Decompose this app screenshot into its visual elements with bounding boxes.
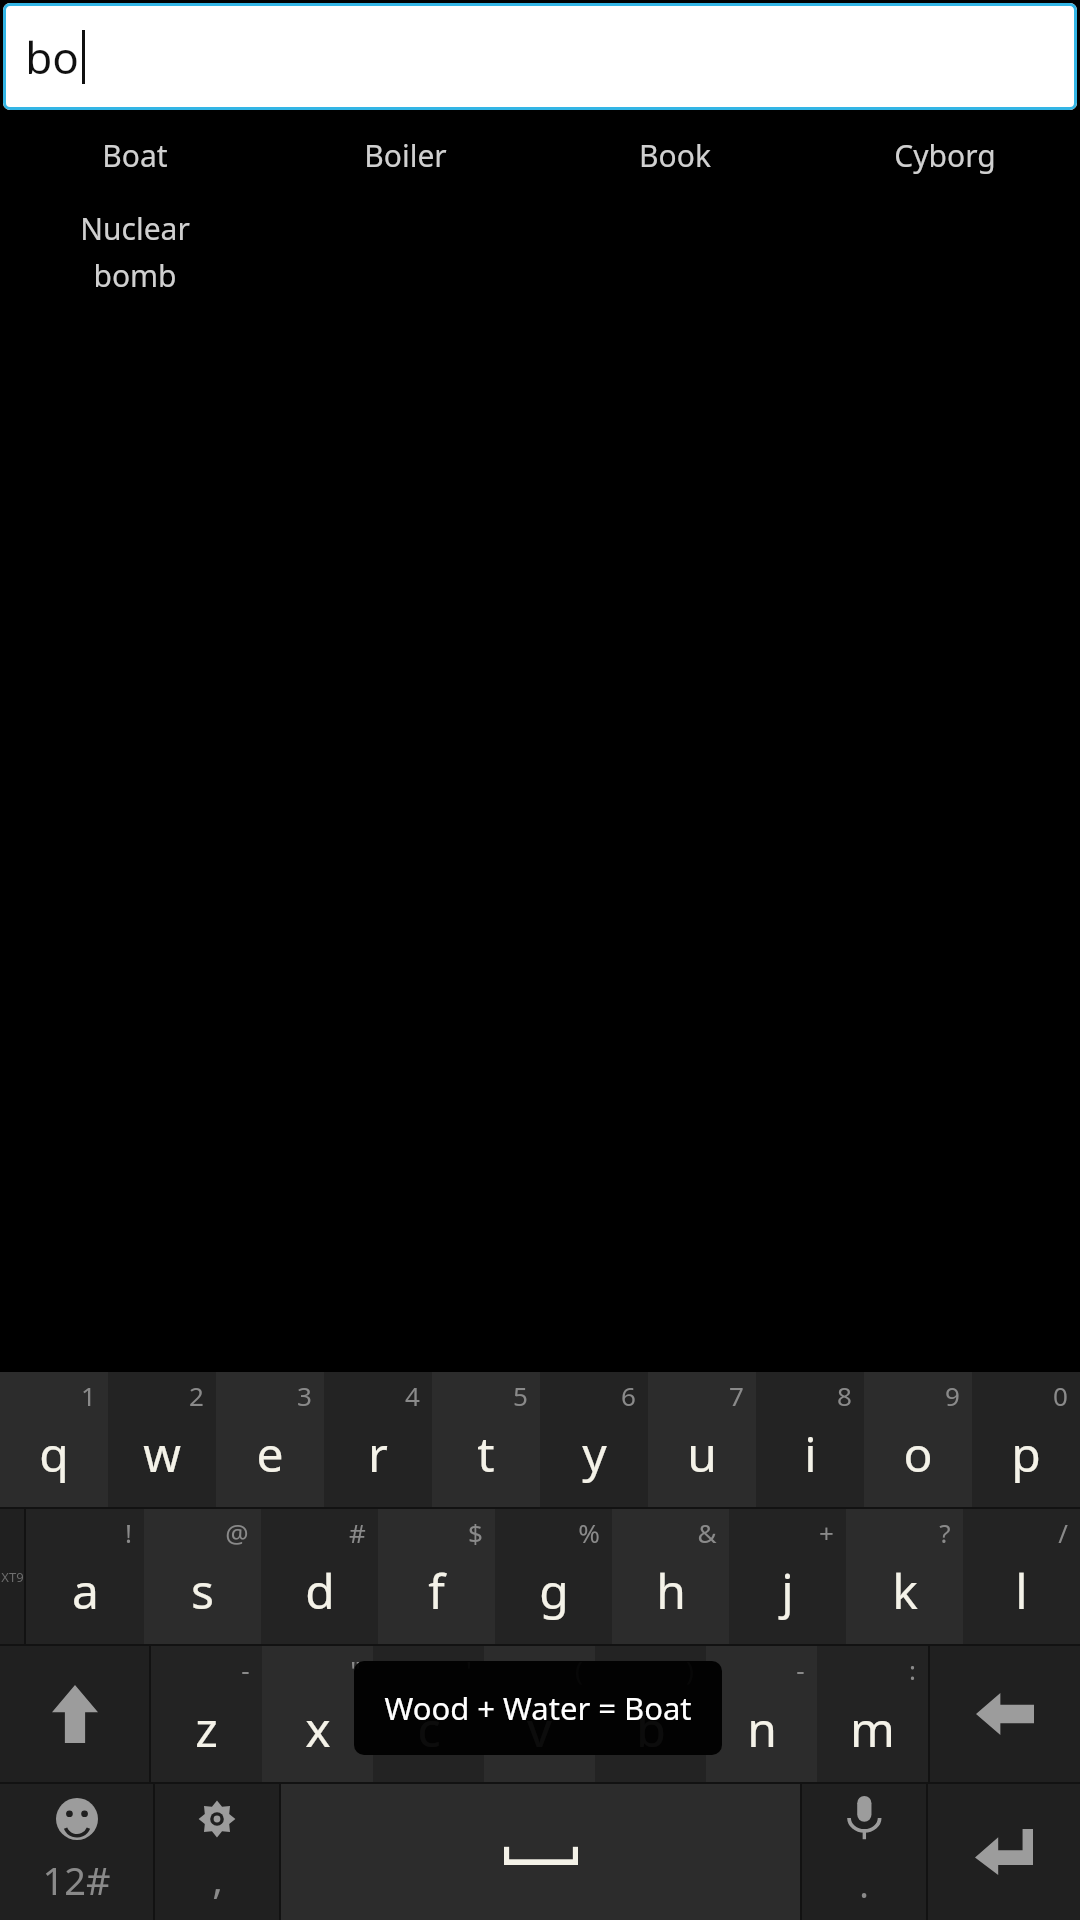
staticText: &	[697, 1515, 717, 1550]
button[interactable]: !	[26, 1509, 144, 1644]
button[interactable]: /	[963, 1509, 1080, 1644]
staticText: Nuclear	[80, 208, 190, 249]
staticText: 8	[837, 1378, 852, 1413]
staticText: ?	[939, 1515, 951, 1550]
staticText: #	[349, 1515, 366, 1550]
button[interactable]: 8	[756, 1372, 864, 1507]
staticText: -	[796, 1652, 805, 1687]
button[interactable]: Symbols	[0, 1784, 153, 1920]
button[interactable]: (	[484, 1646, 595, 1782]
staticText: bo	[25, 27, 79, 87]
staticText: "	[350, 1652, 361, 1687]
staticText: q	[39, 1421, 69, 1486]
button[interactable]: Boiler	[270, 131, 540, 180]
staticText: 1	[81, 1378, 96, 1413]
button[interactable]: $	[378, 1509, 495, 1644]
staticText: .	[859, 1860, 869, 1909]
staticText: x	[305, 1696, 331, 1761]
staticText: Cyborg	[894, 135, 996, 176]
button[interactable]: Shift	[0, 1646, 149, 1782]
button[interactable]: -	[706, 1646, 817, 1782]
staticText: 2	[189, 1378, 204, 1413]
staticText: t	[477, 1421, 495, 1486]
staticText: +	[819, 1515, 834, 1550]
staticText: 3	[297, 1378, 312, 1413]
staticText: 12#	[42, 1854, 111, 1906]
button[interactable]: 5	[432, 1372, 540, 1507]
staticText: j	[781, 1558, 794, 1623]
staticText: y	[582, 1421, 607, 1486]
staticText: u	[687, 1421, 717, 1486]
button[interactable]: 2	[108, 1372, 216, 1507]
button[interactable]: 6	[540, 1372, 648, 1507]
staticText: n	[747, 1696, 777, 1761]
button[interactable]: Voice input	[802, 1784, 926, 1920]
staticText: e	[256, 1421, 284, 1486]
button[interactable]: '	[373, 1646, 484, 1782]
button[interactable]: Space	[281, 1784, 800, 1920]
staticText: g	[539, 1558, 569, 1623]
staticText: d	[305, 1558, 335, 1623]
staticText: o	[903, 1421, 933, 1486]
button[interactable]: "	[262, 1646, 373, 1782]
button[interactable]: #	[261, 1509, 378, 1644]
button[interactable]: 0	[972, 1372, 1080, 1507]
staticText: :	[909, 1652, 916, 1687]
staticText: %	[578, 1515, 600, 1550]
staticText: p	[1011, 1421, 1041, 1486]
staticText: !	[125, 1515, 132, 1550]
button[interactable]: Book	[540, 131, 810, 180]
button[interactable]: bo	[3, 3, 1077, 110]
staticText: 5	[513, 1378, 528, 1413]
staticText: z	[195, 1696, 218, 1761]
staticText: i	[804, 1421, 817, 1486]
button[interactable]: Enter	[928, 1784, 1080, 1920]
button[interactable]: 9	[864, 1372, 972, 1507]
button[interactable]: Nuclear	[0, 208, 270, 296]
staticText: 4	[405, 1378, 420, 1413]
button[interactable]: ?	[846, 1509, 963, 1644]
staticText: XT9	[1, 1568, 24, 1586]
staticText: m	[850, 1696, 895, 1761]
staticText: )	[686, 1652, 694, 1687]
staticText: $	[468, 1515, 483, 1550]
staticText: v	[527, 1696, 552, 1761]
button[interactable]: Cyborg	[810, 131, 1080, 180]
button[interactable]: Boat	[0, 131, 270, 180]
staticText: 9	[945, 1378, 960, 1413]
staticText: 7	[729, 1378, 744, 1413]
button[interactable]: 4	[324, 1372, 432, 1507]
staticText: 0	[1053, 1378, 1068, 1413]
button[interactable]: %	[495, 1509, 612, 1644]
staticText: c	[417, 1696, 441, 1761]
staticText: b	[636, 1696, 666, 1761]
staticText: l	[1015, 1558, 1028, 1623]
staticText: bomb	[93, 255, 177, 296]
button[interactable]: 1	[0, 1372, 108, 1507]
button[interactable]: XT9	[0, 1509, 24, 1644]
button[interactable]: :	[817, 1646, 928, 1782]
button[interactable]: Backspace	[930, 1646, 1080, 1782]
staticText: /	[1058, 1515, 1068, 1550]
button[interactable]: 7	[648, 1372, 756, 1507]
button[interactable]: )	[595, 1646, 706, 1782]
staticText: @	[225, 1515, 249, 1550]
staticText: r	[368, 1421, 388, 1486]
button[interactable]: 3	[216, 1372, 324, 1507]
staticText: f	[428, 1558, 445, 1623]
staticText: Boat	[102, 135, 168, 176]
button[interactable]: +	[729, 1509, 846, 1644]
staticText: Book	[639, 135, 711, 176]
staticText: (	[575, 1652, 583, 1687]
staticText: ,	[212, 1851, 223, 1905]
staticText: '	[466, 1652, 472, 1687]
staticText: h	[656, 1558, 686, 1623]
staticText: a	[72, 1558, 99, 1623]
staticText: s	[191, 1558, 214, 1623]
button[interactable]: @	[144, 1509, 261, 1644]
staticText: k	[892, 1558, 918, 1623]
button[interactable]: Settings	[155, 1784, 279, 1920]
staticText: w	[143, 1421, 181, 1486]
button[interactable]: -	[151, 1646, 262, 1782]
button[interactable]: &	[612, 1509, 729, 1644]
